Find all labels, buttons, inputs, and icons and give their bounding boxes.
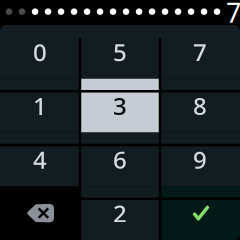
staticText: 5 <box>113 36 127 68</box>
button[interactable]: 7 <box>160 25 240 79</box>
button[interactable]: 2 <box>80 186 160 240</box>
button[interactable]: Confirm <box>160 186 240 240</box>
button[interactable]: Delete <box>0 186 80 240</box>
button[interactable]: 0 <box>0 25 80 79</box>
staticText: 2 <box>113 197 127 229</box>
button[interactable]: 8 <box>160 79 240 133</box>
button[interactable]: 4 <box>0 132 80 186</box>
button[interactable]: 5 <box>80 25 160 79</box>
staticText: 0 <box>33 36 47 68</box>
staticText: 7 <box>226 0 240 30</box>
button[interactable]: 6 <box>80 132 160 186</box>
button[interactable]: 3 <box>80 79 160 133</box>
staticText: 9 <box>193 143 207 175</box>
button[interactable]: 1 <box>0 79 80 133</box>
staticText: 6 <box>113 143 127 175</box>
staticText: 7 <box>193 36 207 68</box>
button[interactable]: 9 <box>160 132 240 186</box>
staticText: 8 <box>193 90 207 122</box>
staticText: 3 <box>113 90 127 122</box>
staticText: 1 <box>33 90 47 122</box>
staticText: 4 <box>33 143 47 175</box>
